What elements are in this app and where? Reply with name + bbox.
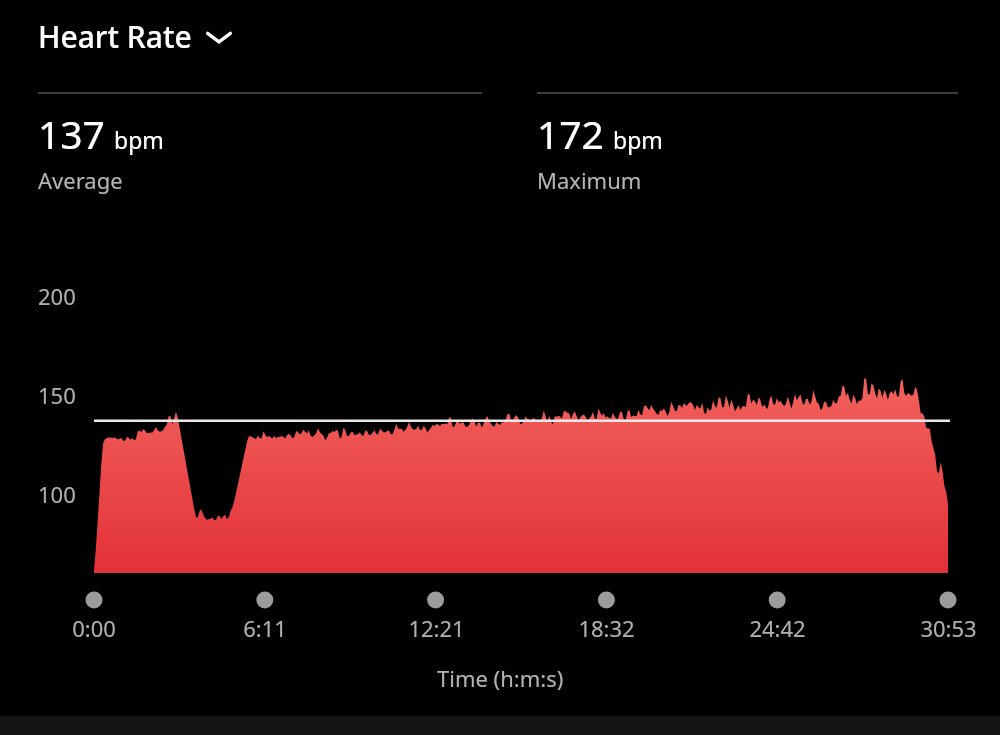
staticText: 150 — [38, 380, 76, 410]
button[interactable]: 137 — [38, 92, 482, 195]
staticText: bpm — [613, 124, 663, 155]
staticText: 24:42 — [749, 613, 806, 643]
button[interactable]: Heart Rate — [38, 16, 234, 57]
staticText: 18:32 — [578, 613, 635, 643]
other: Expand Heart Rate — [204, 22, 234, 52]
staticText: Average — [38, 165, 123, 195]
staticText: 200 — [38, 281, 76, 311]
staticText: 0:00 — [72, 613, 116, 643]
staticText: 12:21 — [408, 613, 465, 643]
staticText: 6:11 — [243, 613, 287, 643]
staticText: 100 — [38, 479, 76, 509]
staticText: Time (h:m:s) — [437, 663, 564, 693]
button[interactable]: 172 — [537, 92, 958, 195]
staticText: 172 — [537, 107, 604, 160]
staticText: 30:53 — [920, 613, 977, 643]
staticText: Maximum — [537, 165, 642, 195]
staticText: bpm — [114, 124, 164, 155]
staticText: Heart Rate — [38, 16, 192, 57]
staticText: 137 — [38, 107, 105, 160]
